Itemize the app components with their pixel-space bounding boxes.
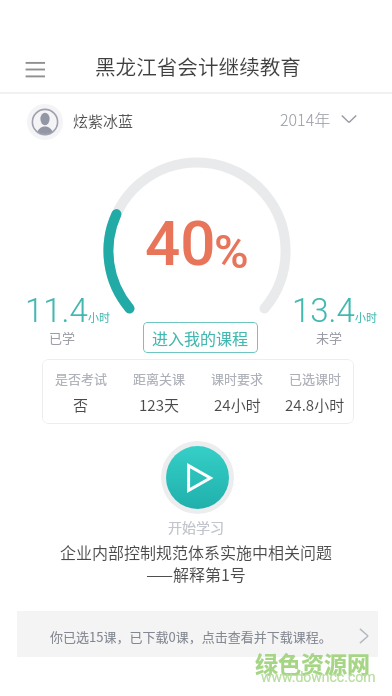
staticText: 24.8小时 <box>285 394 345 416</box>
button[interactable]: Menu <box>18 50 52 88</box>
staticText: 11.4 <box>25 291 88 330</box>
staticText: 是否考试 <box>55 369 108 388</box>
staticText: 24小时 <box>214 394 261 416</box>
staticText: 炫紫冰蓝 <box>73 110 134 132</box>
button[interactable]: 2014年 <box>280 107 357 130</box>
staticText: 你已选15课，已下载0课，点击查看并下载课程。 <box>50 627 332 646</box>
staticText: 小时 <box>355 309 377 325</box>
staticText: 13.4 <box>292 291 355 330</box>
staticText: 未学 <box>316 328 343 347</box>
staticText: 小时 <box>88 309 110 325</box>
staticText: 绿色资源网 <box>255 646 370 679</box>
staticText: 123天 <box>139 394 179 416</box>
button[interactable]: 进入我的课程 <box>143 322 258 353</box>
staticText: www.downcc.com <box>261 669 376 685</box>
staticText: 企业内部控制规范体系实施中相关问题 ——解释第1号 <box>20 540 372 585</box>
staticText: 进入我的课程 <box>152 326 249 349</box>
staticText: 黑龙江省会计继续教育 <box>95 51 301 81</box>
staticText: 课时要求 <box>211 369 264 388</box>
staticText: 40 <box>145 207 216 280</box>
staticText: 2014年 <box>280 107 331 130</box>
staticText: 否 <box>73 394 89 416</box>
staticText: 已选课时 <box>289 369 342 388</box>
button[interactable]: 你已选15课，已下载0课，点击查看并下载课程。 <box>17 611 378 657</box>
staticText: 距离关课 <box>133 369 186 388</box>
button[interactable]: Start learning <box>166 446 229 509</box>
staticText: 已学 <box>49 328 76 347</box>
staticText: % <box>214 224 249 279</box>
staticText: 开始学习 <box>0 517 392 537</box>
